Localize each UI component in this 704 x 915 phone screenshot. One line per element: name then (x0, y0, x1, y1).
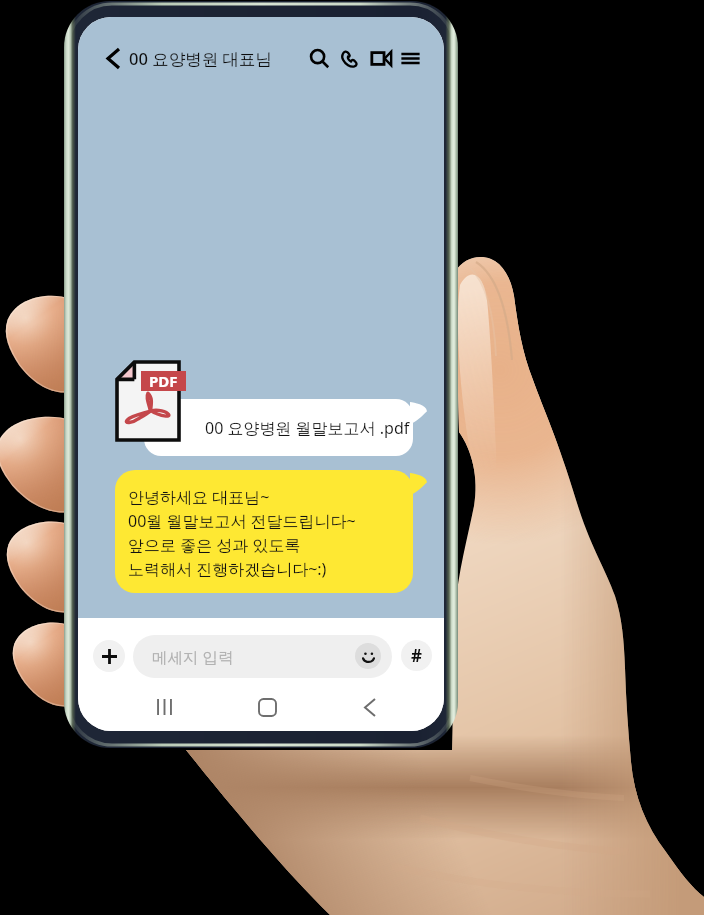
button[interactable]: Back (98, 43, 128, 73)
button[interactable]: Recent apps (149, 692, 179, 722)
button[interactable]: Home (252, 692, 282, 722)
button[interactable]: Back (355, 692, 385, 722)
button[interactable]: Call (336, 44, 364, 72)
button[interactable]: Add attachment (93, 640, 125, 672)
staticText: # (411, 644, 422, 667)
button[interactable]: Search (305, 44, 333, 72)
button[interactable]: Emoji (355, 643, 381, 669)
button[interactable]: 안녕하세요 대표님~ 00월 월말보고서 전달드립니다~ 앞으로 좋은 성과 있… (115, 470, 413, 593)
button[interactable]: Video call (367, 44, 395, 72)
button[interactable]: Menu (396, 44, 424, 72)
staticText: 00 요양병원 월말보고서 .pdf (205, 417, 410, 439)
button[interactable]: 메세지 입력 (133, 635, 392, 678)
button[interactable]: 00 요양병원 월말보고서 .pdf (144, 399, 413, 456)
staticText: 00 요양병원 대표님 (129, 47, 272, 70)
button[interactable]: Hashtag (401, 640, 432, 671)
staticText: PDF (149, 371, 178, 391)
staticText: 메세지 입력 (152, 646, 234, 667)
staticText: 안녕하세요 대표님~ 00월 월말보고서 전달드립니다~ 앞으로 좋은 성과 있… (128, 486, 356, 580)
